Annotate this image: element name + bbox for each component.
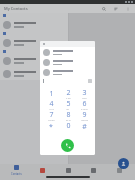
button[interactable] xyxy=(40,47,95,57)
staticText: GHI xyxy=(49,109,54,110)
button[interactable] xyxy=(109,164,129,176)
button[interactable]: 9 xyxy=(77,110,91,121)
staticText: 8 xyxy=(66,110,71,120)
button[interactable]: 5 xyxy=(61,99,75,110)
button[interactable] xyxy=(40,57,95,67)
button[interactable] xyxy=(40,67,95,77)
staticText: 2 xyxy=(66,88,71,98)
button[interactable]: 0 xyxy=(61,121,75,132)
button[interactable]: Search xyxy=(101,6,107,12)
button[interactable]: Clear xyxy=(40,77,95,85)
button[interactable]: 4 xyxy=(44,99,58,110)
staticText: Contacts xyxy=(11,172,22,176)
button[interactable]: 1 xyxy=(44,88,58,99)
staticText: PQRS xyxy=(48,120,55,121)
button[interactable] xyxy=(83,164,103,176)
staticText: 6 xyxy=(82,99,87,109)
staticText: My Contacts xyxy=(4,6,28,11)
button[interactable]: Contacts xyxy=(6,164,26,176)
button[interactable] xyxy=(0,36,68,49)
staticText: 3 xyxy=(82,88,87,98)
button[interactable] xyxy=(32,164,52,176)
staticText: 9 xyxy=(82,110,87,120)
staticText: 4 xyxy=(49,99,54,109)
button[interactable]: More options xyxy=(125,6,131,12)
button[interactable]: * xyxy=(44,121,58,132)
button[interactable]: Call xyxy=(61,139,74,152)
staticText: ABC xyxy=(66,98,71,99)
staticText: JKL xyxy=(66,109,70,110)
button[interactable]: 8 xyxy=(61,110,75,121)
staticText: DEF xyxy=(82,98,87,99)
button[interactable] xyxy=(0,67,68,80)
button[interactable]: Add contact xyxy=(118,158,129,169)
button[interactable] xyxy=(0,54,68,67)
button[interactable]: Sort xyxy=(113,6,119,12)
button[interactable]: 2 xyxy=(61,88,75,99)
staticText: WXYZ xyxy=(81,120,88,121)
button[interactable]: 6 xyxy=(77,99,91,110)
button[interactable] xyxy=(0,18,68,31)
staticText: 1 xyxy=(49,89,54,99)
staticText: 7 xyxy=(49,110,54,120)
staticText: MNO xyxy=(81,109,88,110)
staticText: * xyxy=(49,122,53,132)
button[interactable]: 3 xyxy=(77,88,91,99)
staticText: 5 xyxy=(66,99,71,109)
staticText: TUV xyxy=(66,120,71,121)
button[interactable]: 7 xyxy=(44,110,58,121)
staticText: 0 xyxy=(66,121,71,131)
button[interactable] xyxy=(58,164,78,176)
staticText: # xyxy=(82,122,87,132)
button[interactable]: # xyxy=(77,121,91,132)
